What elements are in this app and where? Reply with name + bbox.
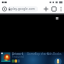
button[interactable]: Top charts: [35, 52, 50, 56]
staticText: play.google.com: [11, 7, 35, 11]
button[interactable]: Tabs: [50, 5, 58, 13]
button[interactable]: Kids: [47, 52, 53, 56]
staticText: Artwork: [12, 52, 24, 56]
staticText: Games: [27, 52, 37, 56]
staticText: Top charts: [35, 52, 50, 56]
staticText: Kids: [47, 52, 53, 56]
button[interactable]: Games: [27, 52, 37, 56]
button[interactable]: Books: [53, 52, 62, 56]
staticText: Featured: [12, 55, 24, 59]
button[interactable]: Add: [42, 5, 50, 13]
staticText: Books: [53, 52, 62, 56]
button[interactable]: More options: [58, 5, 64, 13]
button[interactable]: Home: [1, 5, 8, 13]
